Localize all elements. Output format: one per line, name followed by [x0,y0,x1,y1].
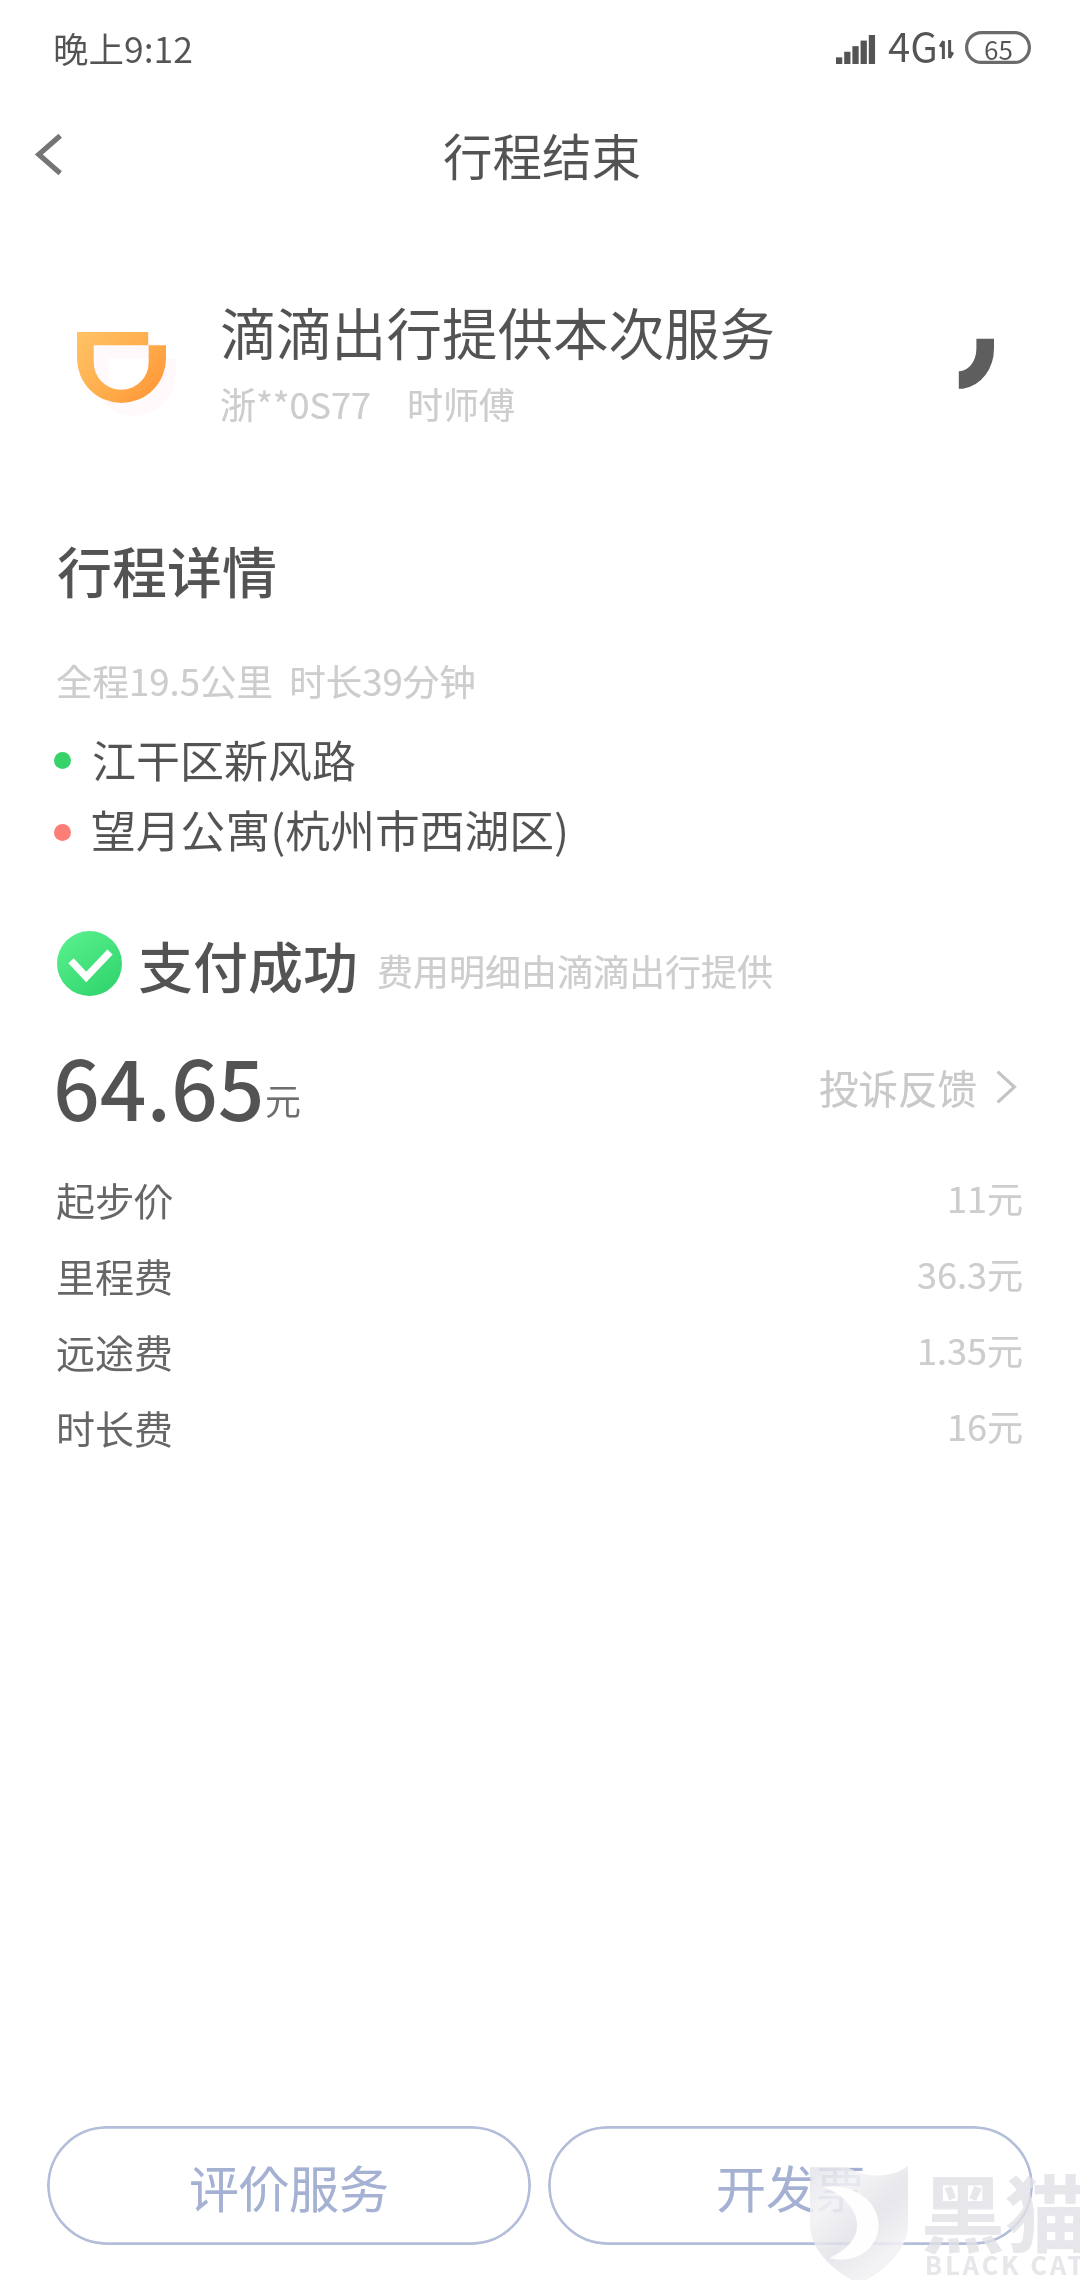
staticText: 11元 [0,1171,1023,1223]
staticText: 64.65 [53,1026,265,1145]
staticText: 望月公寓(杭州市西湖区) [91,796,570,861]
staticText: 时师傅 [407,377,516,429]
staticText: 起步价 [56,1171,174,1227]
staticText: 浙**0S77 [220,377,372,429]
staticText: 1.35元 [0,1323,1023,1375]
staticText: 滴滴出行提供本次服务 [220,291,776,371]
staticText: 投诉反馈 [819,1058,977,1115]
staticText: 费用明细由滴滴出行提供 [377,944,774,996]
staticText: 元 [265,1073,302,1125]
staticText: 时长费 [56,1399,174,1455]
button[interactable]: Back [11,116,87,192]
staticText: 里程费 [56,1247,174,1303]
staticText: 16元 [0,1399,1023,1451]
staticText: BLACK CAT [925,2246,1080,2280]
staticText: 晚上9:12 [53,22,193,73]
staticText: 36.3元 [0,1247,1023,1299]
button[interactable]: 评价服务 [47,2126,531,2245]
staticText: 行程详情 [57,529,278,609]
button[interactable]: Call driver [928,316,1016,404]
button[interactable]: 投诉反馈 [819,1058,1016,1115]
staticText: 评价服务 [189,2150,389,2222]
staticText: 65 [984,30,1013,63]
button[interactable]: 开发票 [548,2126,1033,2245]
staticText: 远途费 [56,1323,174,1379]
staticText: 支付成功 [138,924,359,1004]
staticText: 江干区新风路 [92,727,356,791]
staticText: 行程结束 [2,119,1080,191]
staticText: 开发票 [716,2150,866,2222]
staticText: 黑猫 [921,2149,1080,2271]
staticText: 全程19.5公里 时长39分钟 [56,654,476,707]
staticText: 4G [888,16,938,74]
